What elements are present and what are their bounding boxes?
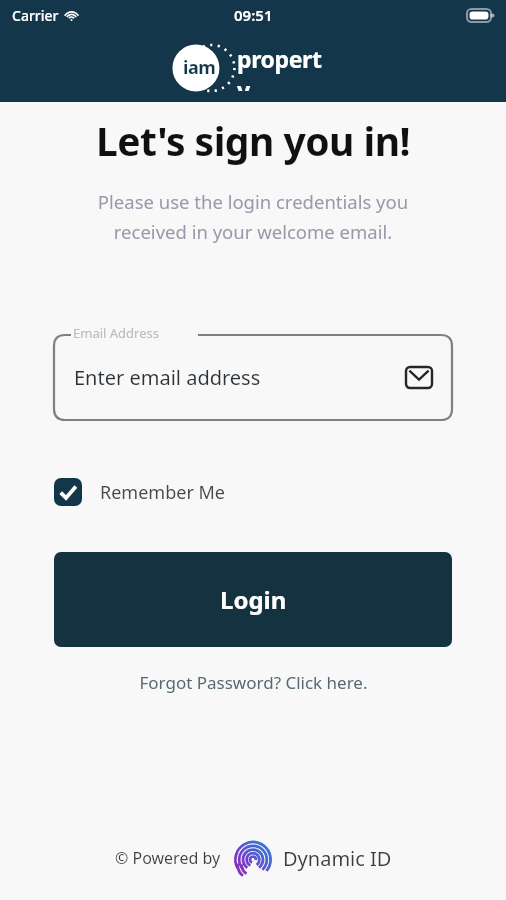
staticText: iam [183,55,216,80]
staticText: Email Address [73,324,159,342]
staticText: Forgot Password? Click here. [139,671,368,694]
other: Dynamic ID fingerprint [233,838,273,878]
staticText: Remember Me [100,480,225,505]
staticText: Login [220,583,287,616]
staticText: Enter email address [74,364,406,391]
staticText: property [237,43,333,91]
staticText: Carrier [12,6,59,25]
staticText: © Powered by [115,847,221,869]
staticText: 09:51 [234,5,273,25]
button[interactable]: Email Address [54,324,452,420]
button[interactable]: Remember Me [54,474,239,510]
other: Email [406,367,432,388]
staticText: Let's sign you in! [0,114,506,167]
button[interactable]: Login [54,552,452,647]
staticText: Dynamic ID [283,845,392,872]
button[interactable]: Forgot Password? Click here. [0,667,506,698]
staticText: Please use the login credentials you rec… [60,189,446,244]
